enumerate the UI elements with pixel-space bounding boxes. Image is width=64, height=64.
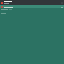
button[interactable] bbox=[1, 13, 63, 14]
button[interactable]: App logo bbox=[1, 2, 3, 4]
button[interactable] bbox=[0, 5, 64, 8]
button[interactable] bbox=[1, 9, 63, 10]
